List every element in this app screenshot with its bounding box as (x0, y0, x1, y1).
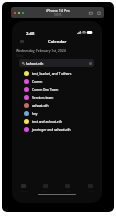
button[interactable]: Calendar (12, 181, 34, 194)
staticText: iPhone 14 Pro (46, 8, 70, 13)
button[interactable]: Profile (79, 181, 102, 194)
staticText: kahoot.eth (26, 61, 44, 66)
button[interactable]: Comm Dev Team (12, 85, 102, 93)
staticText: test and ashoat.eth (32, 119, 62, 123)
staticText: Corem (32, 79, 43, 83)
staticText: test, bucket, and 7 others (32, 71, 72, 75)
button[interactable]: jonringer and cahoot.eth (12, 125, 102, 133)
button[interactable]: Clear search (89, 62, 92, 65)
button[interactable]: hey (12, 109, 102, 117)
button[interactable]: kahoot.eth (19, 59, 94, 67)
staticText: ashoat.eth (32, 103, 49, 107)
button[interactable]: ashoat.eth (12, 101, 102, 109)
button[interactable]: Screenshot (89, 11, 93, 15)
staticText: Today (16, 54, 24, 58)
staticText: 100 % (54, 13, 62, 17)
button[interactable]: Inbox (34, 181, 56, 194)
button[interactable]: Services team (12, 93, 102, 101)
staticText: 2:48 (26, 31, 35, 37)
staticText: jonringer and cahoot.eth (32, 127, 71, 131)
staticText: Comm Dev Team (32, 87, 59, 91)
staticText: hey (32, 111, 38, 115)
button[interactable]: Apps (56, 181, 79, 194)
button[interactable]: Corem (12, 77, 102, 85)
button[interactable]: Menu (18, 38, 25, 45)
staticText: Calendar (48, 39, 67, 45)
staticText: Wednesday, February 1st, 2024 (16, 48, 66, 53)
button[interactable]: Record (97, 11, 101, 15)
staticText: Services team (32, 95, 54, 99)
button[interactable]: test, bucket, and 7 others (12, 69, 102, 77)
button[interactable]: test and ashoat.eth (12, 117, 102, 125)
